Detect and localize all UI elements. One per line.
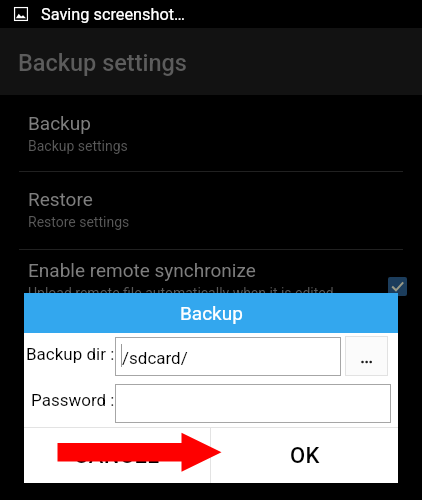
button[interactable]: CANCEL xyxy=(24,428,210,483)
staticText: Backup settings xyxy=(18,49,187,77)
staticText: Backup xyxy=(180,302,243,324)
staticText: Backup xyxy=(28,112,91,134)
staticText: CANCEL xyxy=(74,443,160,469)
staticText: Upload remote file automatically when it… xyxy=(28,285,334,301)
button[interactable]: Backup xyxy=(0,95,422,171)
button[interactable]: /sdcard/ xyxy=(115,337,341,376)
button[interactable] xyxy=(115,384,391,423)
staticText: Backup dir : xyxy=(26,344,115,364)
button[interactable]: Restore xyxy=(0,171,422,249)
staticText: Password : xyxy=(31,390,115,410)
staticText: OK xyxy=(290,443,320,469)
staticText: Restore xyxy=(28,188,93,210)
staticText: Restore settings xyxy=(28,214,130,230)
staticText: Backup settings xyxy=(28,138,128,154)
button[interactable]: OK xyxy=(211,428,398,483)
button[interactable]: Browse xyxy=(345,336,388,376)
staticText: Enable remote synchronize xyxy=(28,259,256,281)
button[interactable]: Enable remote synchronize xyxy=(0,250,422,320)
staticText: Saving screenshot… xyxy=(41,5,185,24)
button[interactable]: Enable remote synchronize xyxy=(388,277,407,296)
staticText: /sdcard/ xyxy=(122,348,188,368)
